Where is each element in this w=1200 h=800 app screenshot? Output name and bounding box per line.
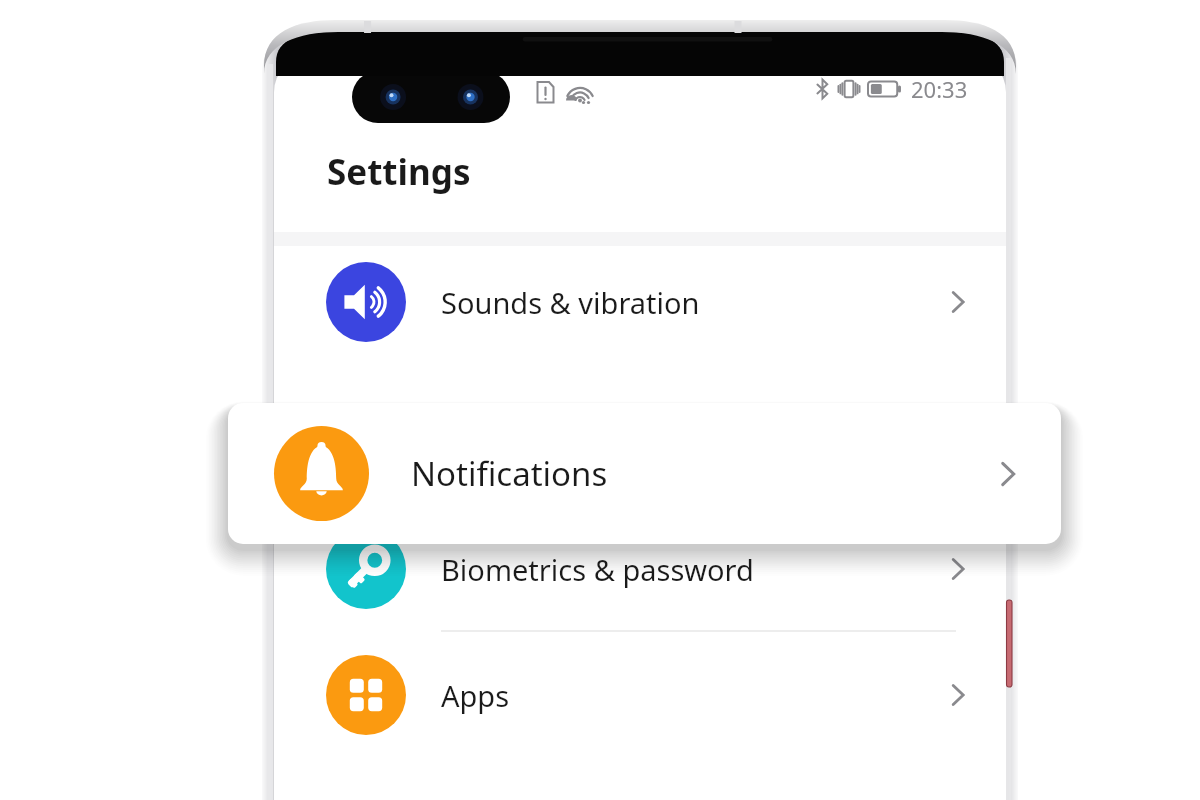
button[interactable]: Apps xyxy=(274,632,1006,758)
staticText: Settings xyxy=(327,148,471,196)
button[interactable] xyxy=(274,358,1006,506)
staticText: Notifications xyxy=(411,451,997,496)
staticText: Apps xyxy=(441,676,948,715)
button[interactable]: Notifications xyxy=(228,403,1061,544)
staticText: 20:33 xyxy=(911,74,968,104)
button[interactable]: Biometrics & password xyxy=(274,506,1006,632)
staticText: Biometrics & password xyxy=(441,550,948,589)
button[interactable]: Sounds & vibration xyxy=(274,246,1006,358)
staticText: Sounds & vibration xyxy=(441,283,948,322)
